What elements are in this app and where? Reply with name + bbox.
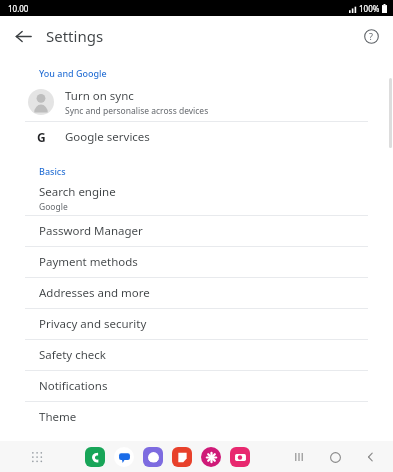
button[interactable]: Gallery: [201, 447, 221, 467]
staticText: Google services: [65, 129, 150, 145]
staticText: Theme: [39, 409, 77, 425]
button[interactable]: Apps: [26, 446, 48, 468]
staticText: Addresses and more: [39, 285, 150, 301]
staticText: Sync and personalise across devices: [65, 105, 209, 117]
staticText: ?: [369, 30, 373, 42]
staticText: Basics: [39, 165, 66, 177]
button[interactable]: Privacy and security: [0, 309, 393, 339]
button[interactable]: Home: [323, 445, 347, 469]
button[interactable]: Addresses and more: [0, 278, 393, 308]
staticText: Search engine: [39, 184, 116, 200]
staticText: Notifications: [39, 378, 108, 394]
button[interactable]: Notifications: [0, 371, 393, 401]
button[interactable]: Back: [6, 19, 40, 53]
staticText: Privacy and security: [39, 316, 147, 332]
button[interactable]: Search engine: [0, 181, 393, 215]
button[interactable]: Turn on sync: [0, 83, 393, 121]
button[interactable]: Recents: [287, 445, 311, 469]
button[interactable]: Notes: [172, 447, 192, 467]
button[interactable]: Back: [359, 445, 383, 469]
staticText: Google: [39, 201, 68, 213]
button[interactable]: Internet: [143, 447, 163, 467]
button[interactable]: Safety check: [0, 340, 393, 370]
staticText: Settings: [46, 26, 104, 46]
button[interactable]: Phone: [85, 447, 105, 467]
staticText: 100%: [359, 3, 380, 14]
button[interactable]: Help: [356, 21, 386, 51]
staticText: Safety check: [39, 347, 106, 363]
button[interactable]: Payment methods: [0, 247, 393, 277]
staticText: Password Manager: [39, 223, 143, 239]
button[interactable]: Camera: [230, 447, 250, 467]
button[interactable]: G: [0, 122, 393, 152]
staticText: 10.00: [8, 3, 29, 14]
button[interactable]: Theme: [0, 402, 393, 432]
staticText: Payment methods: [39, 254, 138, 270]
staticText: Turn on sync: [65, 88, 134, 104]
staticText: G: [37, 129, 46, 145]
button[interactable]: Password Manager: [0, 216, 393, 246]
button[interactable]: Messages: [114, 447, 134, 467]
staticText: You and Google: [39, 67, 107, 79]
